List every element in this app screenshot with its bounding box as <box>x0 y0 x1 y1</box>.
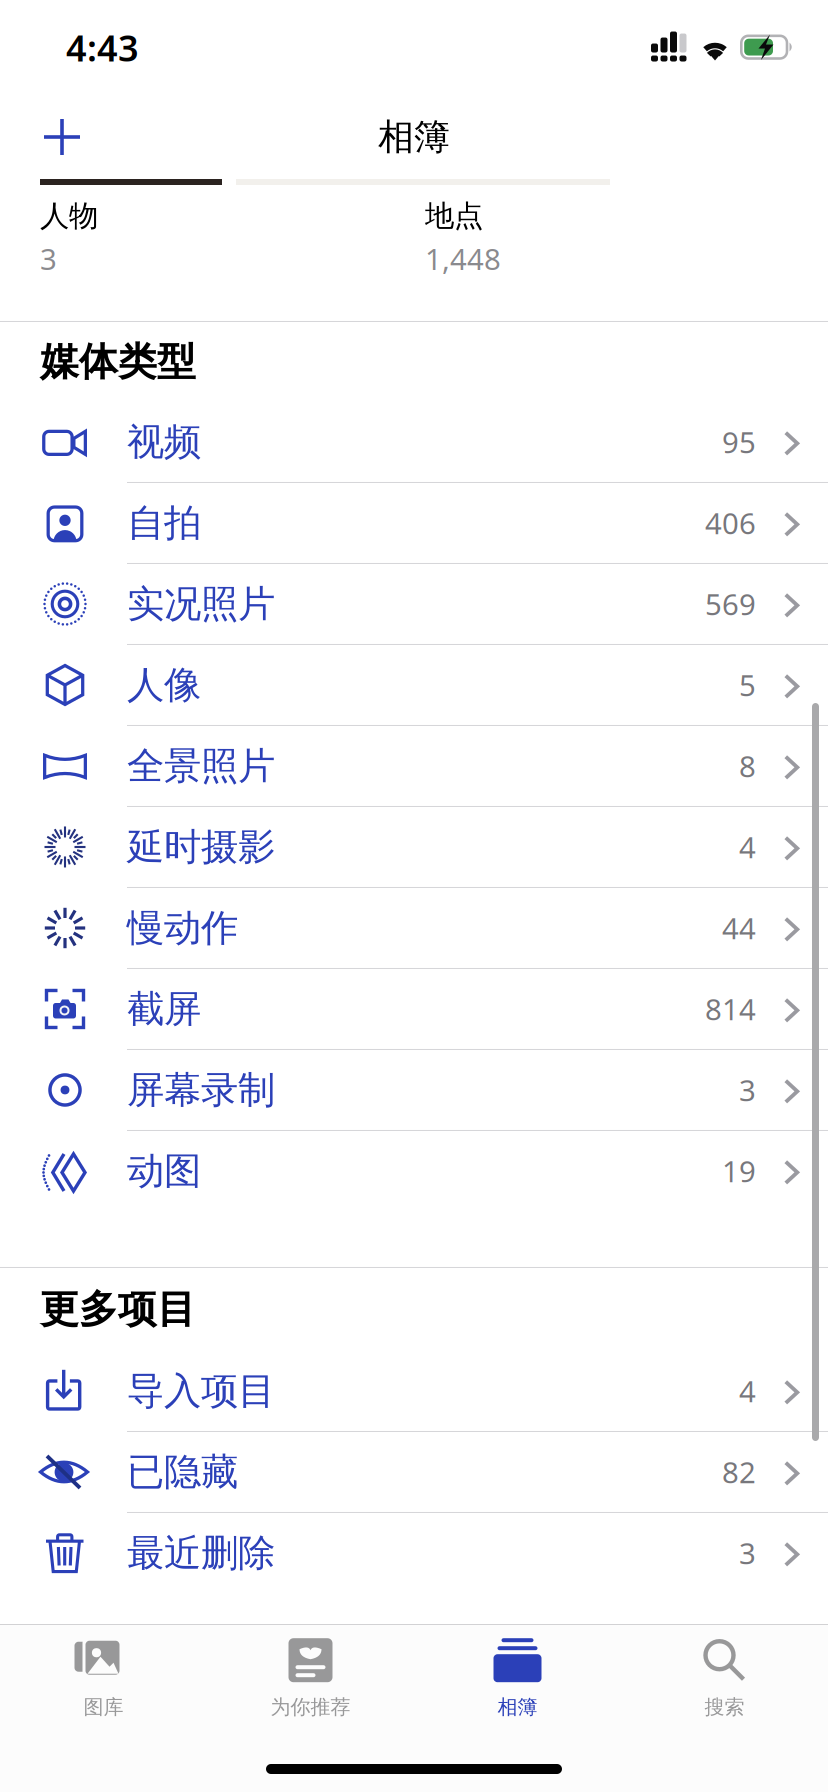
staticText: 视频 <box>127 419 201 465</box>
staticText: 3 <box>40 239 57 278</box>
staticText: 最近删除 <box>127 1530 275 1576</box>
staticText: 更多项目 <box>40 1286 196 1333</box>
button[interactable]: 人像 <box>0 645 828 726</box>
staticText: 自拍 <box>127 500 201 546</box>
button[interactable]: 自拍 <box>0 483 828 564</box>
staticText: 搜索 <box>704 1695 744 1719</box>
staticText: 实况照片 <box>127 581 275 627</box>
button[interactable]: 实况照片 <box>0 564 828 645</box>
staticText: 图库 <box>83 1695 123 1719</box>
staticText: 95 <box>722 422 756 461</box>
button[interactable]: 最近删除 <box>0 1513 828 1594</box>
staticText: 相簿 <box>378 115 450 159</box>
button[interactable]: 截屏 <box>0 969 828 1050</box>
staticText: 慢动作 <box>127 905 238 951</box>
staticText: 406 <box>705 503 756 542</box>
staticText: 5 <box>739 665 756 704</box>
button[interactable]: 地点 <box>425 198 810 278</box>
staticText: 1,448 <box>425 239 501 278</box>
staticText: 全景照片 <box>127 743 275 789</box>
staticText: 导入项目 <box>127 1368 275 1414</box>
staticText: 截屏 <box>127 986 201 1032</box>
staticText: 44 <box>722 908 756 947</box>
button[interactable]: 图库 <box>0 1617 207 1727</box>
button[interactable]: 人物 <box>40 198 425 278</box>
staticText: 4 <box>739 1371 756 1410</box>
button[interactable]: 动图 <box>0 1131 828 1212</box>
button[interactable]: New Album <box>0 96 104 178</box>
button[interactable]: 慢动作 <box>0 888 828 969</box>
button[interactable]: 为你推荐 <box>207 1617 414 1727</box>
button[interactable]: 搜索 <box>621 1617 828 1727</box>
button[interactable]: 相簿 <box>414 1617 621 1727</box>
staticText: 人像 <box>127 662 201 708</box>
button[interactable]: 屏幕录制 <box>0 1050 828 1131</box>
staticText: 媒体类型 <box>40 338 196 386</box>
staticText: 8 <box>739 746 756 785</box>
staticText: 相簿 <box>497 1695 537 1719</box>
staticText: 已隐藏 <box>127 1449 238 1495</box>
staticText: 3 <box>739 1070 756 1109</box>
staticText: 814 <box>705 989 756 1028</box>
staticText: 为你推荐 <box>270 1695 350 1719</box>
staticText: 4 <box>739 827 756 866</box>
button[interactable]: 视频 <box>0 402 828 483</box>
staticText: 地点 <box>425 198 483 234</box>
button[interactable]: 全景照片 <box>0 726 828 807</box>
button[interactable]: 已隐藏 <box>0 1432 828 1513</box>
staticText: 屏幕录制 <box>127 1067 275 1113</box>
staticText: 3 <box>739 1533 756 1572</box>
staticText: 4:43 <box>66 24 139 71</box>
button[interactable]: 导入项目 <box>0 1351 828 1432</box>
staticText: 人物 <box>40 198 98 234</box>
staticText: 延时摄影 <box>127 824 275 870</box>
button[interactable]: 延时摄影 <box>0 807 828 888</box>
staticText: 动图 <box>127 1148 201 1194</box>
staticText: 569 <box>705 584 756 623</box>
staticText: 82 <box>722 1452 756 1491</box>
staticText: 19 <box>722 1151 756 1190</box>
